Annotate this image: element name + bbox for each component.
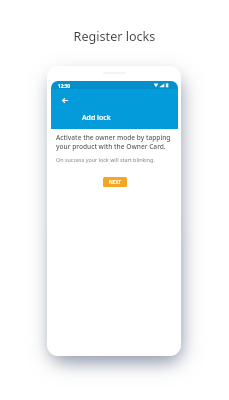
staticText: 12:30 xyxy=(58,83,70,89)
staticText: Activate the owner mode by tapping your … xyxy=(56,133,174,151)
button[interactable]: NEXT xyxy=(103,177,127,187)
staticText: Add lock xyxy=(82,113,111,123)
button[interactable]: Back xyxy=(58,94,71,107)
staticText: Register locks xyxy=(0,28,229,45)
staticText: NEXT xyxy=(109,179,122,186)
staticText: On success your lock will start blinking… xyxy=(56,156,155,163)
